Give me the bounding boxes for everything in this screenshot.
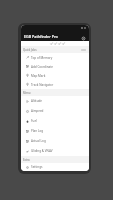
button[interactable]: Actual Log — [21, 136, 89, 146]
staticText: Extra — [23, 158, 30, 162]
button[interactable]: Top of Memory — [21, 53, 89, 62]
staticText: Settings — [31, 165, 43, 169]
staticText: Menu — [23, 91, 31, 95]
staticText: Actual Log — [31, 139, 46, 143]
button[interactable]: Altitude — [21, 96, 89, 106]
staticText: Gliding & VNAV — [31, 149, 53, 153]
staticText: Plan Log — [31, 129, 44, 133]
staticText: Quick Jobs — [23, 48, 37, 52]
staticText: Top of Memory — [31, 56, 53, 60]
staticText: Fuel — [31, 119, 37, 123]
staticText: EGB Pathfinder Pro — [24, 34, 58, 39]
button[interactable]: Plan Log — [21, 126, 89, 136]
staticText: Track Navigator — [31, 83, 54, 87]
staticText: Altitude — [31, 99, 43, 103]
button[interactable]: Settings — [21, 163, 89, 171]
staticText: Airspeed — [31, 109, 44, 113]
button[interactable]: Airspeed — [21, 106, 89, 116]
staticText: Add Coordinate — [31, 65, 54, 69]
button[interactable]: Fuel — [21, 116, 89, 126]
button[interactable]: Settings — [80, 35, 87, 42]
button[interactable]: Add Coordinate — [21, 62, 89, 71]
staticText: Map Mark — [31, 74, 46, 78]
button[interactable]: Gliding & VNAV — [21, 146, 89, 156]
button[interactable]: Track Navigator — [21, 80, 89, 89]
button[interactable]: Map Mark — [21, 71, 89, 80]
